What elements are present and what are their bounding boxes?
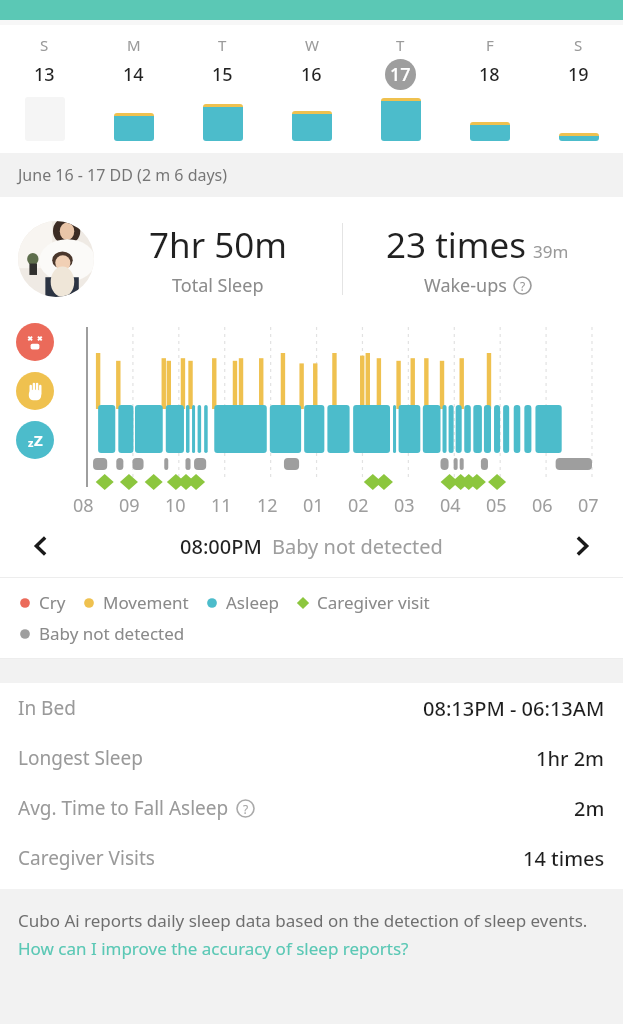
staticText: W <box>305 35 319 55</box>
button[interactable]: S <box>534 25 623 153</box>
staticText: Caregiver visit <box>317 591 430 614</box>
staticText: 7hr 50m <box>149 221 287 269</box>
staticText: 39m <box>533 240 569 263</box>
staticText: 17 <box>390 62 411 87</box>
staticText: z <box>28 435 34 450</box>
staticText: 07 <box>578 493 599 518</box>
staticText: Baby not detected <box>272 533 443 560</box>
staticText: 03 <box>394 493 415 518</box>
staticText: Asleep <box>226 591 280 614</box>
staticText: 08:13PM - 06:13AM <box>423 695 605 722</box>
button[interactable]: Caregiver Visits <box>0 833 623 883</box>
staticText: 11 <box>211 493 232 518</box>
staticText: 2m <box>574 795 605 822</box>
staticText: In Bed <box>18 695 76 721</box>
button[interactable]: T <box>356 25 445 153</box>
staticText: 02 <box>348 493 369 518</box>
staticText: Wake-ups <box>424 273 507 298</box>
staticText: 13 <box>34 62 55 87</box>
staticText: June 16 - 17 DD (2 m 6 days) <box>18 164 228 186</box>
staticText: 05 <box>486 493 507 518</box>
staticText: 10 <box>165 493 186 518</box>
staticText: 04 <box>440 493 461 518</box>
staticText: 23 times <box>386 221 527 269</box>
button[interactable]: Previous <box>0 515 82 577</box>
button[interactable]: Cubo Ai reports daily sleep data based o… <box>18 909 611 960</box>
staticText: 14 <box>123 62 144 87</box>
button[interactable]: F <box>445 25 534 153</box>
staticText: 08 <box>73 493 94 518</box>
button[interactable]: Asleep <box>16 421 54 459</box>
staticText: Cry <box>39 591 66 614</box>
staticText: 06 <box>532 493 553 518</box>
button[interactable]: T <box>178 25 267 153</box>
staticText: 12 <box>257 493 278 518</box>
button[interactable]: Movement <box>16 372 54 410</box>
button[interactable]: Profile photo <box>18 221 94 297</box>
button[interactable]: Avg. Time to Fall Asleep <box>0 783 623 833</box>
button[interactable]: Cry <box>16 323 54 361</box>
staticText: 19 <box>568 62 589 87</box>
button[interactable]: M <box>89 25 178 153</box>
staticText: Caregiver Visits <box>18 845 155 871</box>
staticText: 1hr 2m <box>536 745 605 772</box>
staticText: 14 times <box>523 845 605 872</box>
staticText: Baby not detected <box>39 622 185 645</box>
staticText: M <box>127 35 141 55</box>
button[interactable]: In Bed <box>0 683 623 733</box>
button[interactable]: Next <box>541 515 623 577</box>
button[interactable]: Longest Sleep <box>0 733 623 783</box>
staticText: 09 <box>119 493 140 518</box>
staticText: T <box>396 35 405 55</box>
button[interactable]: S <box>0 25 89 153</box>
staticText: T <box>218 35 227 55</box>
staticText: Z <box>34 430 43 450</box>
staticText: 01 <box>303 493 324 518</box>
staticText: 16 <box>301 62 322 87</box>
staticText: 08:00PM <box>180 533 262 560</box>
button[interactable]: Wake-ups info <box>513 276 532 295</box>
staticText: Movement <box>103 591 189 614</box>
staticText: F <box>486 35 494 55</box>
staticText: 18 <box>479 62 500 87</box>
staticText: S <box>40 35 49 55</box>
staticText: Total Sleep <box>172 273 264 298</box>
staticText: ? <box>243 801 249 817</box>
staticText: S <box>574 35 583 55</box>
staticText: ? <box>520 278 526 294</box>
staticText: Longest Sleep <box>18 745 143 771</box>
staticText: Avg. Time to Fall Asleep <box>18 795 229 821</box>
button[interactable]: W <box>267 25 356 153</box>
staticText: 15 <box>212 62 233 87</box>
